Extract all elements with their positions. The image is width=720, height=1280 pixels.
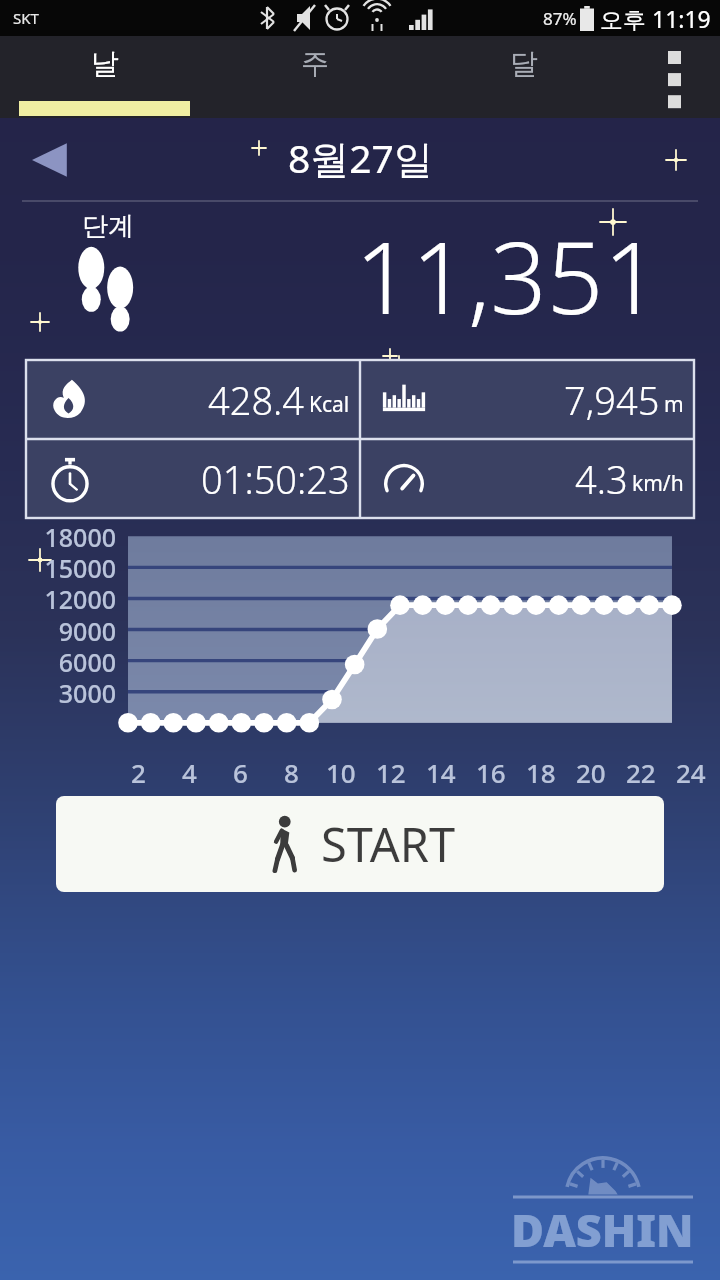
button[interactable]: 4.3 (360, 439, 694, 518)
staticText: 22 (626, 755, 656, 790)
staticText: 6000 (0, 645, 116, 679)
staticText: 12000 (0, 582, 116, 616)
staticText: 01:50:23 (201, 453, 350, 505)
button[interactable]: More options (628, 36, 720, 118)
staticText: SKT (13, 8, 39, 28)
staticText: 2 (131, 755, 146, 790)
button[interactable]: START (56, 796, 664, 892)
button[interactable]: 날 (0, 36, 210, 118)
staticText: 428.4 (208, 374, 305, 426)
staticText: 4.3 (575, 453, 628, 505)
staticText: 18000 (0, 520, 116, 554)
staticText: 날 (91, 46, 119, 81)
button[interactable]: 주 (210, 36, 419, 118)
staticText: km/h (632, 469, 684, 498)
staticText: 8 (284, 755, 299, 790)
staticText: DASHIN (511, 1199, 694, 1260)
staticText: 9000 (0, 614, 116, 648)
staticText: 7,945 (564, 374, 660, 426)
button[interactable]: 01:50:23 (26, 439, 360, 518)
staticText: 12 (376, 755, 406, 790)
staticText: m (664, 390, 684, 419)
staticText: 6 (233, 755, 248, 790)
staticText: START (321, 812, 456, 876)
staticText: 3000 (0, 676, 116, 710)
staticText: 18 (526, 755, 556, 790)
staticText: 10 (326, 755, 356, 790)
staticText: 4 (182, 755, 197, 790)
button[interactable]: Previous day (20, 130, 80, 190)
staticText: 15000 (0, 551, 116, 585)
staticText: 8월27일 (288, 131, 433, 184)
staticText: 달 (510, 46, 538, 81)
staticText: 87% (543, 7, 577, 30)
button[interactable]: 7,945 (360, 360, 694, 439)
button[interactable]: 428.4 (26, 360, 360, 439)
button[interactable]: 달 (419, 36, 628, 118)
staticText: 20 (576, 755, 606, 790)
staticText: 24 (676, 755, 706, 790)
staticText: 단계 (82, 210, 134, 243)
staticText: 11,351 (355, 208, 660, 343)
staticText: 주 (301, 46, 329, 81)
staticText: 16 (476, 755, 506, 790)
staticText: 오후 11:19 (600, 3, 711, 34)
staticText: Kcal (309, 390, 350, 419)
staticText: 14 (426, 755, 456, 790)
